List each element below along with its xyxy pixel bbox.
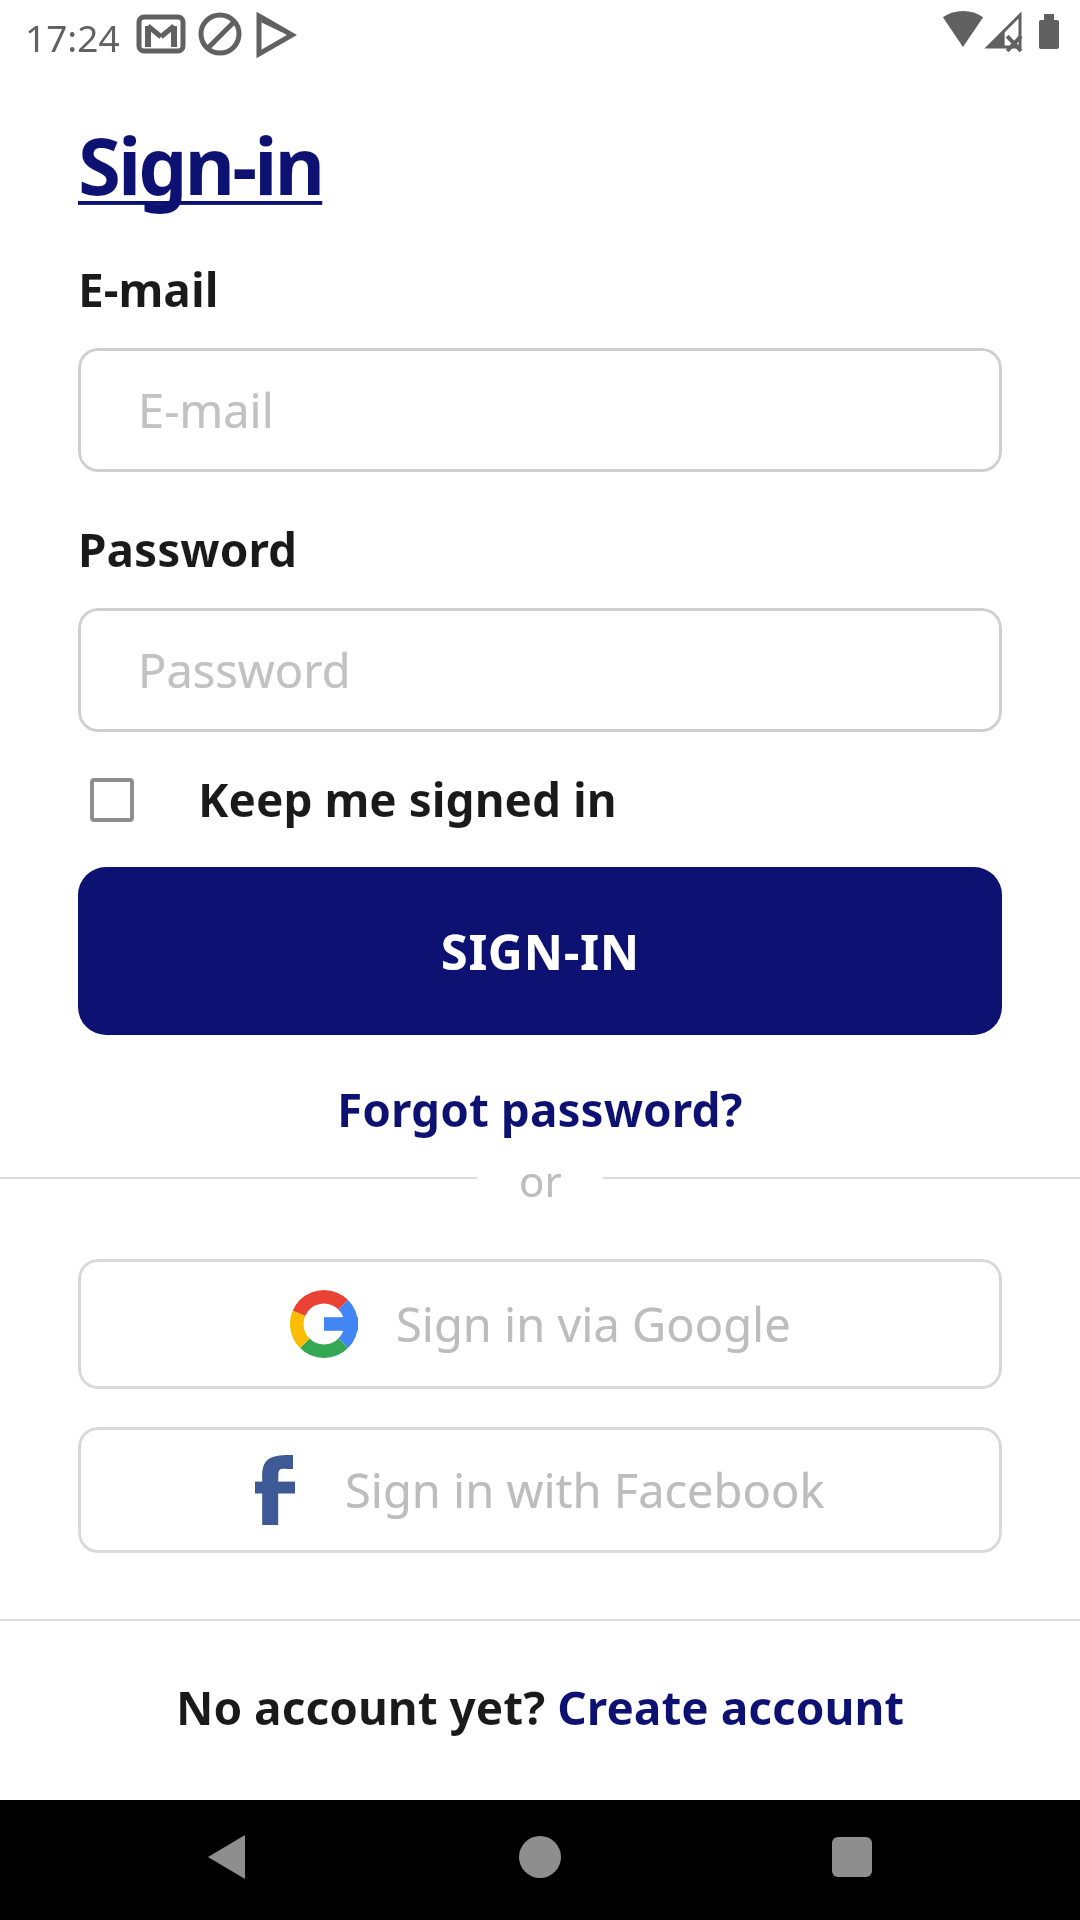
button[interactable]: Forgot password? <box>337 1078 743 1141</box>
staticText: 17:24 <box>25 12 120 62</box>
staticText: Password <box>138 638 351 702</box>
button[interactable] <box>500 1820 580 1900</box>
button[interactable]: Sign in with Facebook <box>78 1427 1002 1553</box>
button[interactable] <box>812 1820 892 1900</box>
staticText: Password <box>78 518 298 581</box>
button[interactable]: Password <box>78 608 1002 732</box>
button[interactable] <box>190 1820 270 1900</box>
staticText: Keep me signed in <box>198 768 617 831</box>
staticText: Sign in with Facebook <box>345 1458 825 1522</box>
button[interactable]: No account yet? Create account <box>176 1676 905 1739</box>
staticText: SIGN-IN <box>441 919 640 984</box>
button[interactable]: Sign in via Google <box>78 1259 1002 1389</box>
button[interactable]: Keep me signed in <box>78 768 617 831</box>
button[interactable]: E-mail <box>78 348 1002 472</box>
staticText: Sign-in <box>78 112 323 218</box>
staticText: E-mail <box>138 378 274 442</box>
staticText: Sign in via Google <box>396 1292 791 1356</box>
button[interactable]: SIGN-IN <box>78 867 1002 1035</box>
staticText: E-mail <box>78 258 219 321</box>
staticText: or <box>519 1152 562 1209</box>
